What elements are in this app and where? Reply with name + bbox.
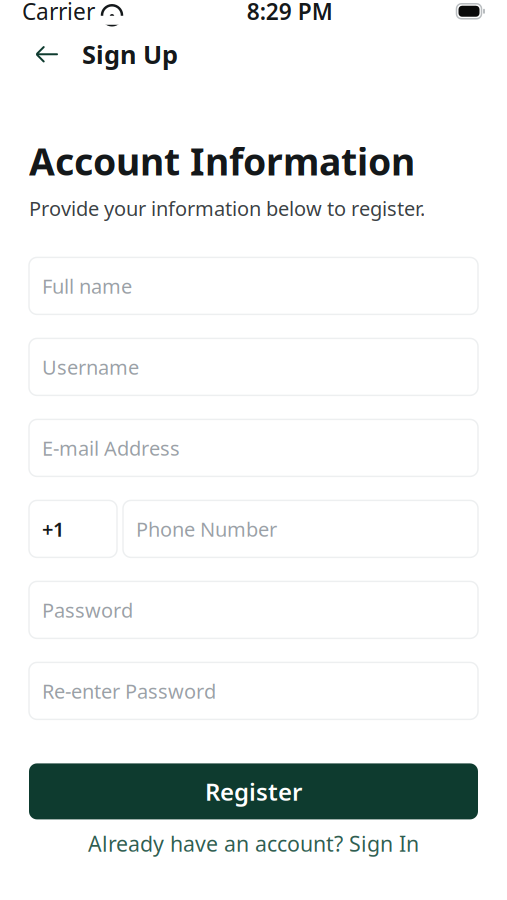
button[interactable]: Register bbox=[29, 763, 478, 819]
staticText: Phone Number bbox=[136, 516, 277, 542]
staticText: Password bbox=[42, 597, 133, 623]
button[interactable]: Re-enter Password bbox=[29, 662, 478, 719]
staticText: Full name bbox=[42, 273, 132, 299]
staticText: Provide your information below to regist… bbox=[29, 195, 425, 221]
staticText: Re-enter Password bbox=[42, 678, 216, 704]
staticText: Carrier bbox=[22, 0, 95, 26]
button[interactable]: Already have an account? Sign In bbox=[68, 819, 439, 868]
button[interactable]: Username bbox=[29, 338, 478, 395]
staticText: +1 bbox=[42, 516, 64, 542]
button[interactable]: E-mail Address bbox=[29, 419, 478, 476]
staticText: Already have an account? Sign In bbox=[88, 829, 419, 858]
staticText: Username bbox=[42, 354, 139, 380]
staticText: Register bbox=[205, 775, 302, 807]
staticText: 8:29 PM bbox=[247, 0, 333, 26]
button[interactable]: Back bbox=[24, 32, 70, 76]
staticText: E-mail Address bbox=[42, 435, 180, 461]
button[interactable]: Full name bbox=[29, 257, 478, 314]
staticText: Account Information bbox=[29, 136, 415, 186]
button[interactable]: Password bbox=[29, 581, 478, 638]
staticText: Sign Up bbox=[82, 37, 178, 71]
